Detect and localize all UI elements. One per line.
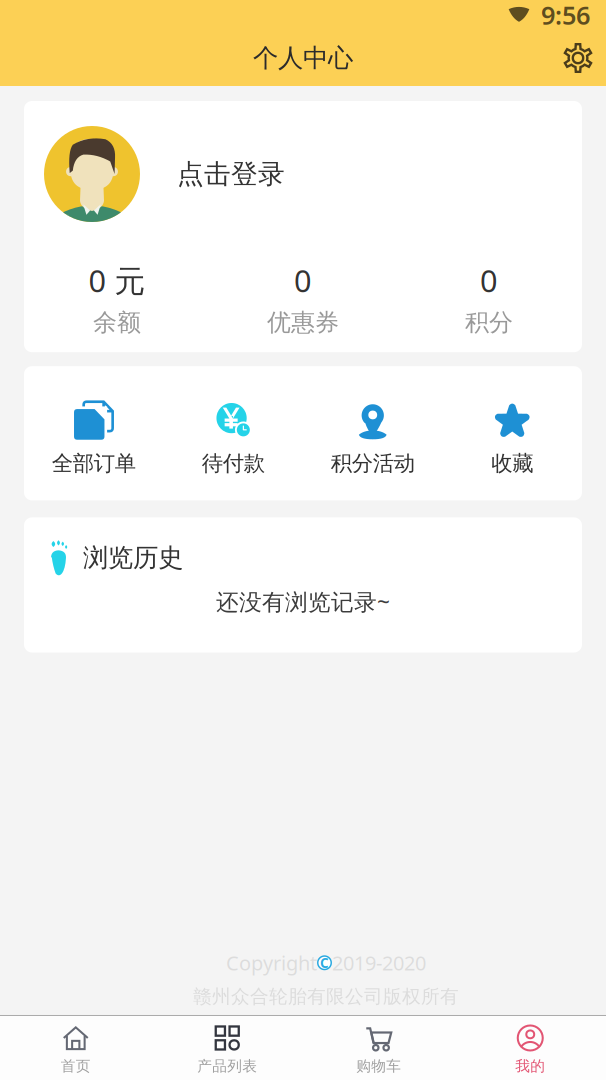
staticText: 我的 [515,1057,545,1075]
staticText: 优惠券 [267,308,339,337]
button[interactable]: 产品列表 [151,1015,303,1080]
button[interactable]: Settings [554,34,602,82]
staticText: 个人中心 [253,42,353,73]
button[interactable]: 0 元 [24,260,210,337]
staticText: 待付款 [202,450,265,476]
button[interactable]: 我的 [454,1015,606,1080]
button[interactable]: 点击登录 [24,101,582,238]
button[interactable]: 待付款 [163,398,303,476]
staticText: 赣州众合轮胎有限公司版权所有 [193,985,459,1008]
staticText: 余额 [93,308,141,337]
staticText: 还没有浏览记录~ [216,586,390,616]
staticText: 积分活动 [331,450,415,476]
staticText: C [320,954,329,972]
staticText: 0 [480,260,498,301]
staticText: 积分 [465,308,513,337]
button[interactable]: 积分活动 [303,398,442,476]
button[interactable]: 0 [210,260,396,337]
button[interactable]: 购物车 [303,1015,454,1080]
staticText: 首页 [61,1057,91,1075]
staticText: 点击登录 [177,158,285,190]
staticText: 0 元 [88,260,145,301]
staticText: 收藏 [491,450,533,476]
staticText: 全部订单 [52,450,136,476]
staticText: 购物车 [356,1057,401,1075]
staticText: 9:56 [541,0,590,32]
staticText: 浏览历史 [83,542,183,573]
button[interactable]: 0 [396,260,582,337]
staticText: 0 [294,260,312,301]
button[interactable]: 收藏 [442,398,582,476]
button[interactable]: 首页 [0,1015,151,1080]
button[interactable]: 全部订单 [24,398,163,476]
staticText: 产品列表 [197,1057,257,1075]
staticText: Copyright [226,949,317,976]
staticText: 2019-2020 [332,949,426,976]
